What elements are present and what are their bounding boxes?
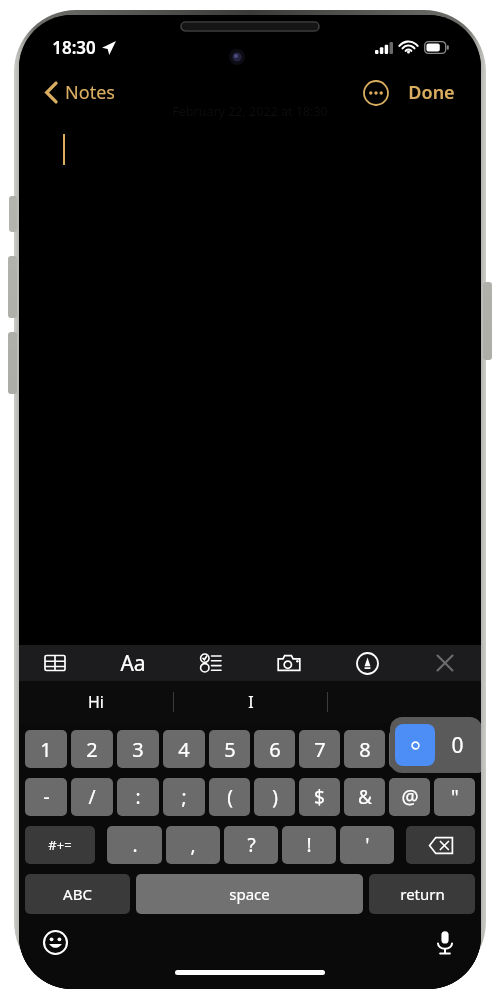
staticText: " (451, 784, 459, 810)
staticText: Aa (120, 649, 146, 678)
staticText: ! (306, 832, 312, 858)
staticText: $ (314, 784, 325, 810)
staticText: Hi (88, 691, 104, 713)
button[interactable]: ; (163, 778, 205, 816)
button[interactable]: $ (299, 778, 340, 816)
button[interactable]: Hide keyboard (423, 647, 467, 679)
button[interactable]: Backspace (406, 826, 475, 864)
staticText: : (135, 784, 141, 810)
staticText: & (358, 784, 372, 810)
button[interactable]: : (117, 778, 159, 816)
button[interactable]: Table (33, 647, 77, 679)
button[interactable]: 2 (71, 730, 113, 768)
button[interactable]: Checklist (189, 647, 233, 679)
staticText: February 22, 2022 at 18:30 (172, 103, 328, 120)
button[interactable]: Insert photo (267, 647, 311, 679)
button[interactable]: Dictation (429, 926, 461, 958)
staticText: ? (247, 832, 256, 858)
button[interactable]: 1 (25, 730, 67, 768)
button[interactable]: 5 (209, 730, 250, 768)
staticText: 1 (40, 736, 52, 763)
button[interactable]: Emoji keyboard (39, 926, 71, 958)
button[interactable]: ! (282, 826, 336, 864)
staticText: ( (227, 784, 233, 810)
button[interactable]: ' (340, 826, 394, 864)
button[interactable] (395, 724, 435, 766)
button[interactable]: More options (360, 77, 392, 109)
button[interactable]: 8 (344, 730, 385, 768)
staticText: ) (272, 784, 278, 810)
staticText: 18:30 (52, 36, 96, 59)
button[interactable]: . (107, 826, 162, 864)
staticText: space (229, 884, 270, 904)
button[interactable]: 6 (254, 730, 295, 768)
staticText: , (190, 832, 196, 858)
button[interactable]: 3 (117, 730, 159, 768)
button[interactable]: 0 (434, 730, 475, 768)
staticText: 0 (449, 736, 461, 763)
staticText: ABC (63, 884, 92, 904)
button[interactable]: Hi (19, 681, 173, 723)
button[interactable]: & (344, 778, 385, 816)
button[interactable]: 9 (389, 730, 430, 768)
button[interactable]: ) (254, 778, 295, 816)
button[interactable]: / (71, 778, 113, 816)
staticText: - (43, 784, 50, 810)
button[interactable]: ? (224, 826, 278, 864)
button[interactable]: #+= (25, 826, 95, 864)
button[interactable]: return (369, 874, 475, 914)
button[interactable]: " (434, 778, 475, 816)
staticText: 4 (178, 736, 190, 763)
button[interactable] (328, 681, 481, 723)
button[interactable]: 7 (299, 730, 340, 768)
staticText: 5 (224, 736, 236, 763)
staticText: 2 (86, 736, 98, 763)
button[interactable]: space (136, 874, 363, 914)
staticText: 6 (269, 736, 281, 763)
button[interactable]: Notes (43, 76, 117, 109)
staticText: / (88, 784, 96, 810)
staticText: #+= (48, 836, 72, 854)
button[interactable]: Markup (345, 647, 389, 679)
button[interactable]: 0 (390, 717, 481, 773)
staticText: 3 (132, 736, 144, 763)
button[interactable]: , (166, 826, 220, 864)
staticText: Notes (65, 80, 115, 105)
staticText: I (248, 691, 254, 713)
button[interactable]: Done (404, 76, 459, 109)
staticText: ' (365, 832, 370, 858)
staticText: Done (408, 80, 455, 105)
button[interactable]: ABC (25, 874, 130, 914)
button[interactable]: - (25, 778, 67, 816)
button[interactable]: @ (389, 778, 430, 816)
staticText: 9 (404, 736, 416, 763)
button[interactable]: Format text (111, 647, 155, 679)
button[interactable]: 4 (163, 730, 205, 768)
staticText: 8 (359, 736, 371, 763)
button[interactable]: I (174, 681, 327, 723)
staticText: 7 (314, 736, 326, 763)
staticText: 0 (451, 731, 464, 760)
staticText: ; (181, 784, 187, 810)
button[interactable]: ( (209, 778, 250, 816)
staticText: . (132, 832, 138, 858)
staticText: return (400, 884, 445, 904)
staticText: @ (401, 784, 419, 810)
